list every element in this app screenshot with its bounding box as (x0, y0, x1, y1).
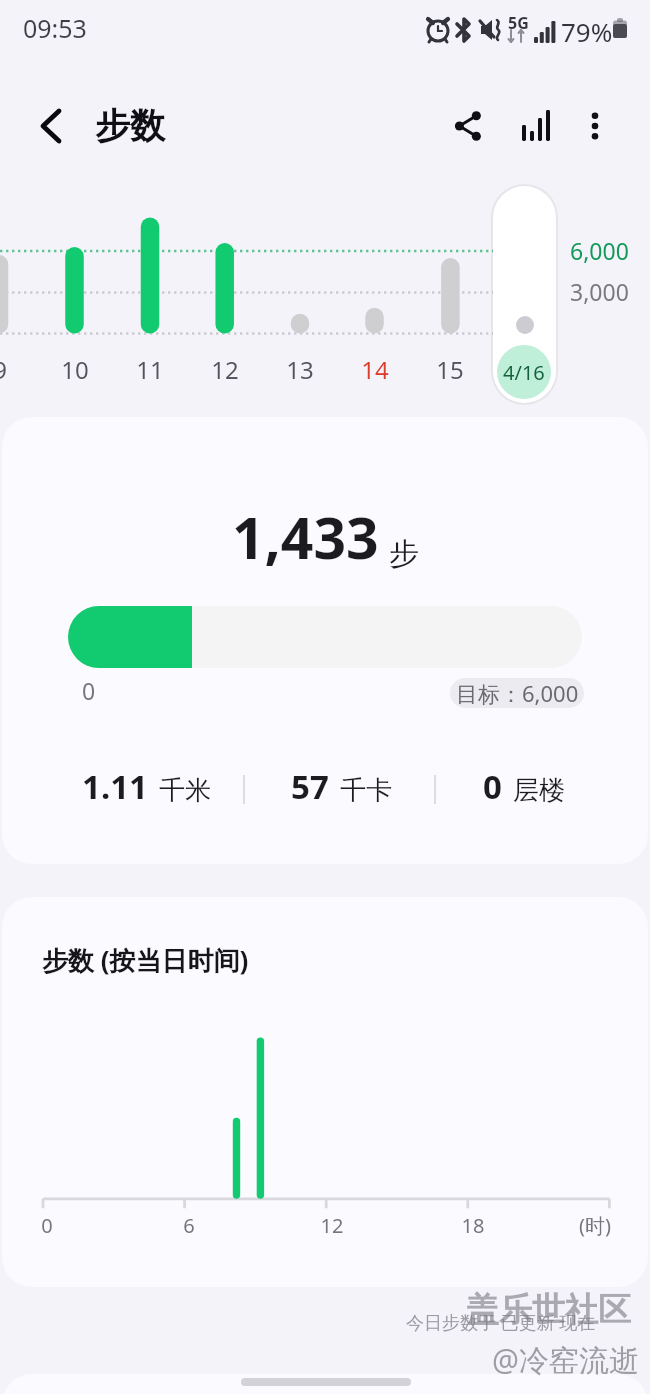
staticText: 千米 (159, 774, 211, 807)
staticText: 5G (508, 12, 529, 34)
staticText: 0 (82, 675, 96, 706)
button[interactable]: Back (19, 93, 85, 159)
staticText: 0 (7, 1212, 87, 1239)
staticText: (时) (555, 1212, 635, 1239)
staticText: 18 (433, 1212, 513, 1239)
button[interactable]: More options (562, 93, 628, 159)
staticText: 11 (125, 353, 175, 386)
button[interactable] (493, 186, 556, 403)
staticText: 步数 (按当日时间) (42, 942, 249, 978)
staticText: 12 (200, 353, 250, 386)
staticText: 3,000 (570, 276, 629, 307)
staticText: 1,433 (232, 498, 379, 576)
staticText: 目标：6,000 (456, 678, 579, 708)
staticText: 千卡 (340, 774, 392, 807)
staticText: 6,000 (570, 235, 629, 266)
staticText: 步数 (95, 104, 165, 148)
staticText: 14 (350, 353, 400, 386)
staticText: 79% (561, 14, 613, 49)
staticText: 盖乐世社区 (466, 1289, 631, 1331)
button[interactable]: Statistics (502, 92, 568, 158)
staticText: 步 (389, 535, 419, 573)
staticText: 层楼 (513, 774, 565, 807)
staticText: 4/16 (503, 359, 545, 386)
staticText: 9 (0, 353, 25, 386)
staticText: 0 (483, 764, 502, 809)
staticText: 今日步数于 已更新 现在 (406, 1310, 596, 1335)
staticText: @冷窑流逝 (492, 1339, 639, 1380)
button[interactable]: Share (434, 93, 500, 159)
staticText: 15 (425, 353, 475, 386)
staticText: 6 (149, 1212, 229, 1239)
staticText: 09:53 (23, 11, 87, 45)
staticText: 10 (50, 353, 100, 386)
staticText: 1.11 (82, 764, 148, 809)
staticText: 57 (291, 764, 329, 809)
staticText: 12 (292, 1212, 372, 1239)
staticText: 13 (275, 353, 325, 386)
